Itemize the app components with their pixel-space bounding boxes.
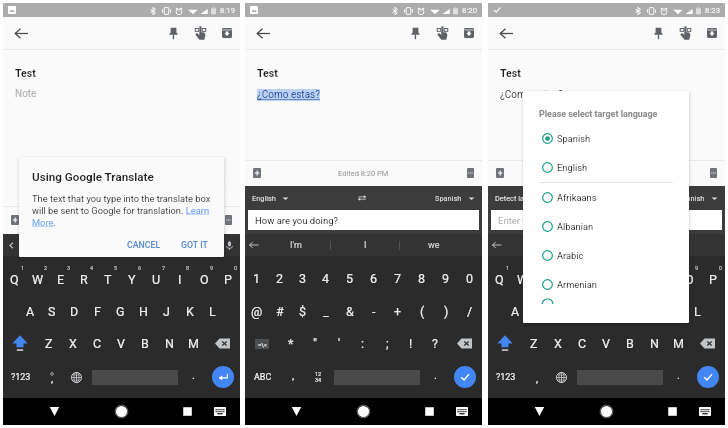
button[interactable]: Pin bbox=[169, 27, 178, 40]
button[interactable]: 4 bbox=[557, 261, 581, 295]
button[interactable]: Language bbox=[306, 360, 330, 394]
button[interactable]: A bbox=[504, 295, 526, 327]
button[interactable]: 2 bbox=[26, 261, 49, 295]
button[interactable]: CANCEL bbox=[123, 237, 165, 253]
button[interactable]: D bbox=[548, 295, 571, 327]
button[interactable]: Albanian bbox=[523, 212, 689, 241]
button[interactable]: 3 bbox=[49, 261, 72, 295]
button[interactable]: H bbox=[617, 295, 640, 327]
button[interactable]: @ bbox=[245, 295, 268, 327]
button[interactable]: 9 bbox=[192, 261, 216, 295]
button[interactable]: Back bbox=[255, 25, 272, 42]
button[interactable]: H bbox=[132, 295, 155, 327]
button[interactable]: ) bbox=[434, 295, 458, 327]
button[interactable]: , bbox=[524, 360, 549, 394]
button[interactable]: _ bbox=[314, 295, 338, 327]
button[interactable]: Previous bbox=[6, 240, 17, 251]
button[interactable]: Z bbox=[522, 327, 546, 360]
button[interactable]: Add bbox=[253, 168, 261, 178]
button[interactable]: 0 bbox=[458, 261, 482, 295]
button[interactable]: ? bbox=[423, 327, 447, 360]
button[interactable]: Back bbox=[488, 234, 505, 256]
button[interactable]: 5 bbox=[338, 261, 362, 295]
button[interactable]: 6 bbox=[120, 261, 144, 295]
button[interactable]: X bbox=[61, 327, 85, 360]
button[interactable]: 8 bbox=[410, 261, 434, 295]
button[interactable]: Pin bbox=[411, 27, 420, 40]
button[interactable]: S bbox=[526, 295, 548, 327]
button[interactable]: Language bbox=[64, 360, 88, 394]
button[interactable]: 1 bbox=[3, 261, 26, 295]
button[interactable]: 9 bbox=[434, 261, 458, 295]
button[interactable]: Back bbox=[290, 405, 303, 418]
button[interactable]: Switch keyboard bbox=[699, 407, 711, 416]
button[interactable]: Space bbox=[330, 360, 423, 394]
button[interactable]: Afrikaans bbox=[523, 183, 689, 212]
button[interactable]: . bbox=[666, 360, 690, 394]
button[interactable]: Detect language bbox=[495, 194, 549, 203]
button[interactable]: 3 bbox=[291, 261, 314, 295]
button[interactable]: Pin bbox=[654, 27, 663, 40]
button[interactable]: K bbox=[663, 295, 686, 327]
button[interactable]: Back bbox=[498, 25, 515, 42]
button[interactable]: Home bbox=[357, 405, 370, 418]
button[interactable]: Shift bbox=[3, 327, 37, 360]
button[interactable]: X bbox=[546, 327, 570, 360]
button[interactable]: Enter bbox=[205, 360, 240, 394]
button[interactable]: N bbox=[642, 327, 666, 360]
button[interactable]: Home bbox=[600, 405, 613, 418]
button[interactable]: C bbox=[85, 327, 109, 360]
button[interactable]: V bbox=[594, 327, 618, 360]
button[interactable]: F bbox=[86, 295, 109, 327]
button[interactable]: Space bbox=[88, 360, 181, 394]
button[interactable]: - bbox=[362, 295, 386, 327]
button[interactable]: 5 bbox=[581, 261, 605, 295]
button[interactable]: L bbox=[201, 295, 224, 327]
button[interactable]: Back bbox=[245, 234, 262, 256]
button[interactable]: Swap languages bbox=[357, 193, 367, 203]
button[interactable]: More options bbox=[225, 215, 232, 225]
button[interactable]: , bbox=[281, 360, 306, 394]
button[interactable]: Shift bbox=[488, 327, 522, 360]
button[interactable]: , bbox=[39, 360, 64, 394]
button[interactable]: G bbox=[109, 295, 132, 327]
button[interactable]: Voice input bbox=[224, 240, 235, 251]
button[interactable]: D bbox=[63, 295, 86, 327]
button[interactable]: G bbox=[594, 295, 617, 327]
button[interactable]: Gesture bbox=[195, 26, 206, 40]
button[interactable]: ( bbox=[410, 295, 434, 327]
button[interactable]: Archive bbox=[222, 28, 232, 38]
button[interactable]: English bbox=[523, 153, 689, 182]
button[interactable]: 1 bbox=[488, 261, 511, 295]
button[interactable]: . bbox=[423, 360, 447, 394]
button[interactable]: Spanish bbox=[678, 194, 718, 203]
button[interactable]: 3 bbox=[534, 261, 557, 295]
button[interactable]: GOT IT bbox=[177, 237, 212, 253]
button[interactable]: Delete bbox=[690, 327, 725, 360]
button[interactable]: 0 bbox=[216, 261, 240, 295]
button[interactable]: / bbox=[458, 295, 482, 327]
button[interactable]: Add bbox=[496, 168, 504, 178]
button[interactable]: S bbox=[41, 295, 63, 327]
button[interactable]: B bbox=[133, 327, 157, 360]
button[interactable]: B bbox=[618, 327, 642, 360]
button[interactable]: Archive bbox=[464, 28, 474, 38]
button[interactable]: More options bbox=[467, 168, 474, 178]
button[interactable]: ! bbox=[399, 327, 423, 360]
button[interactable]: + bbox=[386, 295, 410, 327]
button[interactable]: Recents bbox=[424, 406, 435, 417]
button[interactable]: English bbox=[252, 194, 289, 203]
button[interactable]: 2 bbox=[268, 261, 291, 295]
button[interactable]: Delete bbox=[447, 327, 482, 360]
button[interactable]: Spanish bbox=[523, 124, 689, 153]
button[interactable]: 1 bbox=[245, 261, 268, 295]
button[interactable]: M bbox=[666, 327, 690, 360]
button[interactable]: 0 bbox=[701, 261, 725, 295]
button[interactable]: 6 bbox=[362, 261, 386, 295]
button[interactable]: # bbox=[268, 295, 291, 327]
button[interactable]: I'm bbox=[262, 234, 330, 256]
button[interactable]: Spanish bbox=[435, 194, 475, 203]
button[interactable]: Switch keyboard bbox=[214, 407, 226, 416]
